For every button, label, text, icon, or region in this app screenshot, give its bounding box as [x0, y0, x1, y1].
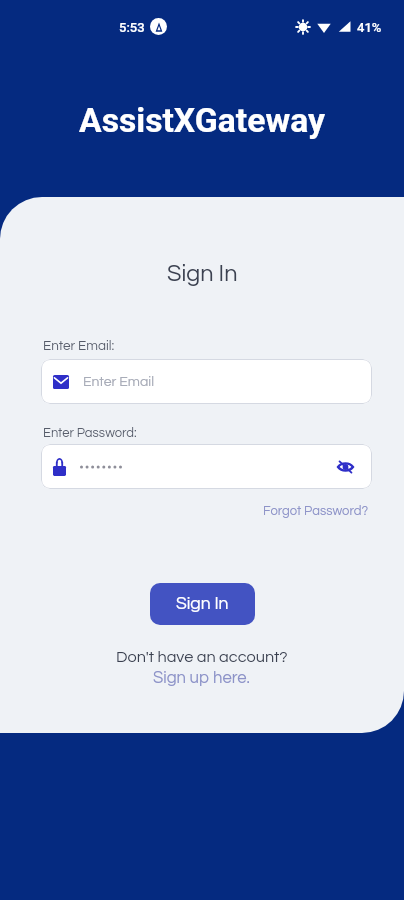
staticText: Sign In [176, 595, 229, 613]
staticText: 41% [357, 20, 382, 35]
staticText: Sign In [167, 262, 238, 286]
button[interactable]: Sign In [150, 583, 255, 625]
staticText: Enter Email [83, 375, 155, 389]
button[interactable]: Sign up here. [153, 669, 251, 686]
staticText: AssistXGateway [79, 101, 325, 140]
button[interactable]: Show password [329, 451, 361, 483]
button[interactable]: Enter Email [41, 359, 372, 404]
staticText: Enter Password: [43, 426, 137, 439]
staticText: Enter Email: [43, 339, 115, 353]
button[interactable]: Forgot Password? [263, 504, 404, 517]
staticText: 5:53 [119, 20, 145, 35]
staticText: Don't have an account? [116, 649, 288, 666]
button[interactable]: Show password [41, 444, 372, 489]
